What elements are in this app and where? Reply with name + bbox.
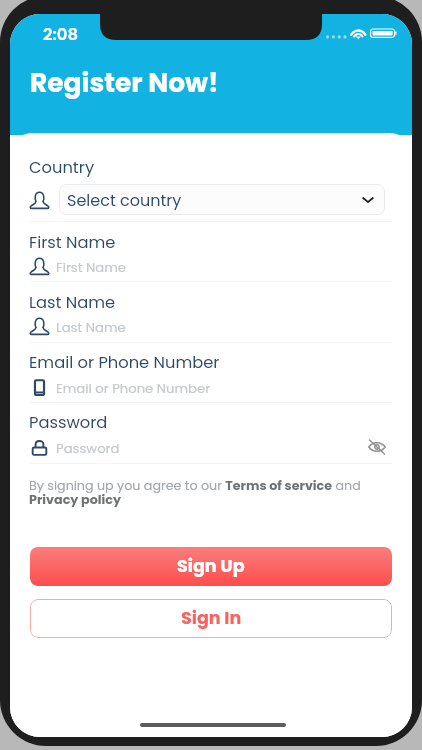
staticText: Password — [29, 411, 108, 434]
button[interactable]: Show password — [366, 436, 388, 458]
staticText: Sign Up — [177, 554, 245, 579]
staticText: Last Name — [29, 291, 116, 314]
staticText: Password — [56, 439, 120, 457]
staticText: Last Name — [56, 318, 126, 336]
button[interactable]: Select country — [59, 184, 385, 215]
staticText: Select country — [67, 189, 182, 211]
staticText: 2:08 — [43, 23, 79, 46]
button[interactable]: Sign In — [30, 599, 392, 638]
staticText: Register Now! — [30, 64, 219, 101]
staticText: First Name — [29, 231, 116, 254]
staticText: By signing up you agree to our Terms of … — [29, 477, 374, 508]
button[interactable]: Sign Up — [30, 547, 392, 586]
staticText: First Name — [56, 258, 126, 276]
staticText: Country — [29, 156, 95, 179]
staticText: Email or Phone Number — [56, 379, 211, 397]
staticText: Sign In — [181, 606, 242, 631]
staticText: Email or Phone Number — [29, 351, 220, 374]
